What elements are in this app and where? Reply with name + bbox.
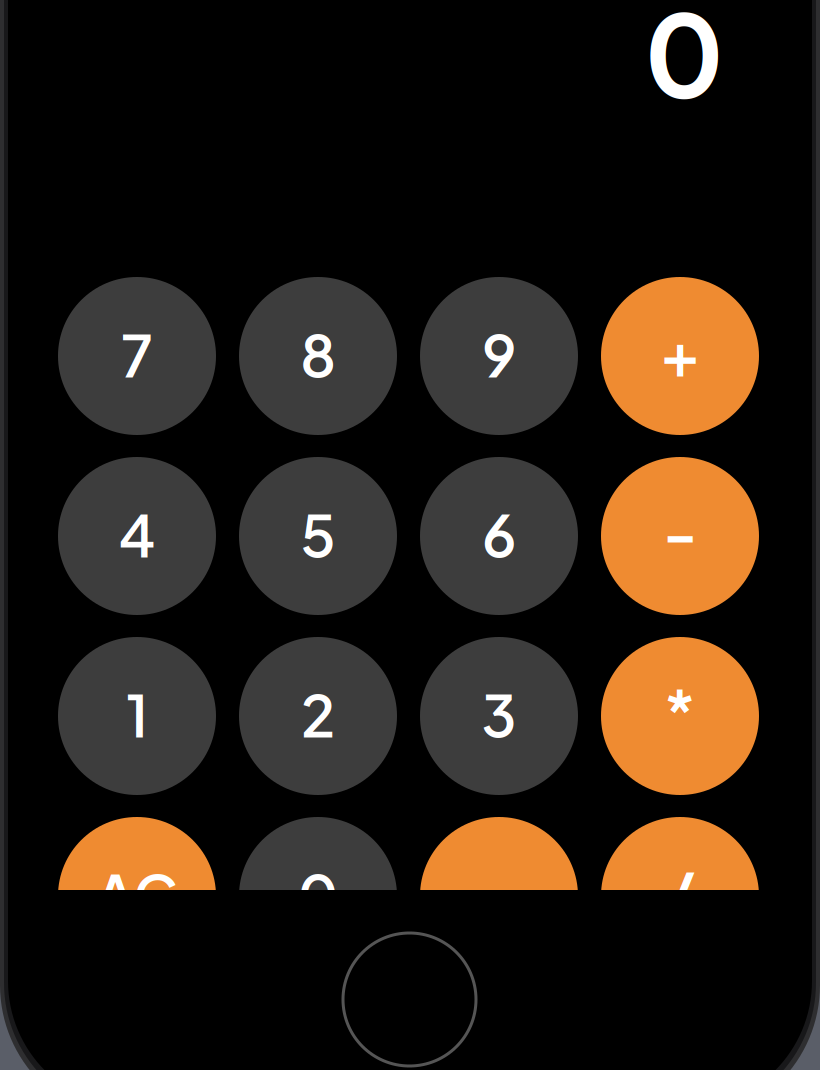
button[interactable]: + (601, 277, 759, 435)
button[interactable]: 5 (239, 457, 397, 615)
staticText: 2 (301, 678, 335, 750)
button[interactable]: 2 (239, 637, 397, 795)
button[interactable]: / (601, 817, 759, 975)
staticText: / (665, 851, 695, 930)
staticText: AC (95, 858, 178, 930)
staticText: 3 (481, 678, 516, 750)
button[interactable]: 1 (58, 637, 216, 795)
button[interactable]: - (601, 457, 759, 615)
staticText: = (480, 858, 517, 930)
staticText: 0 (644, 0, 724, 123)
staticText: - (662, 491, 697, 570)
staticText: + (660, 311, 700, 390)
button[interactable]: 0 (239, 817, 397, 975)
staticText: 4 (118, 498, 155, 570)
button[interactable]: 3 (420, 637, 578, 795)
button[interactable]: = (420, 817, 578, 975)
button[interactable]: 4 (58, 457, 216, 615)
staticText: 9 (482, 318, 516, 390)
button[interactable]: Home (343, 933, 476, 1066)
staticText: * (663, 671, 696, 750)
staticText: 0 (297, 858, 338, 930)
staticText: 6 (482, 498, 516, 570)
button[interactable]: 7 (58, 277, 216, 435)
button[interactable]: AC (58, 817, 216, 975)
button[interactable]: 9 (420, 277, 578, 435)
button[interactable]: 6 (420, 457, 578, 615)
staticText: 5 (300, 498, 335, 570)
staticText: 8 (300, 318, 336, 390)
button[interactable]: 8 (239, 277, 397, 435)
staticText: 1 (126, 678, 148, 750)
staticText: 7 (121, 318, 153, 390)
button[interactable]: * (601, 637, 759, 795)
